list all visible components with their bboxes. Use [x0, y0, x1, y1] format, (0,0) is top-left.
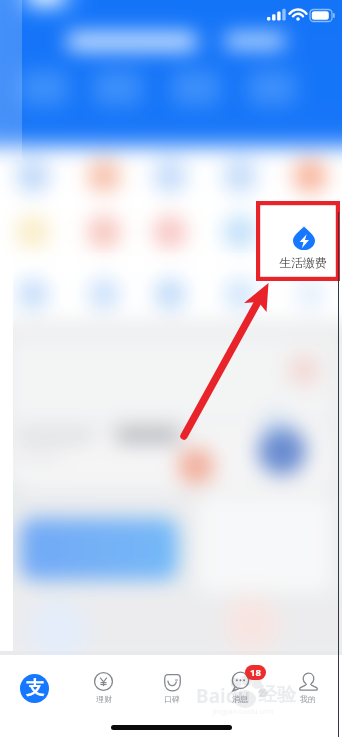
button[interactable]: 口碑 — [138, 672, 206, 704]
staticText: 消息 — [232, 694, 248, 704]
staticText: Baidu — [196, 683, 251, 709]
button[interactable]: 生活缴费 — [260, 205, 336, 277]
staticText: jingyan.baidu.com — [213, 707, 274, 717]
staticText: 生活缴费 — [279, 255, 327, 270]
staticText: 口碑 — [164, 694, 180, 704]
button[interactable]: 理财 — [69, 672, 138, 704]
button[interactable]: 我的 — [274, 672, 342, 704]
button[interactable]: Home — [0, 674, 69, 703]
staticText: 支 — [26, 677, 44, 700]
staticText: 理财 — [96, 694, 112, 704]
button[interactable]: 18 — [206, 672, 274, 704]
staticText: 18 — [250, 666, 261, 679]
staticText: 我的 — [300, 694, 316, 704]
staticText: 经验 — [258, 683, 296, 707]
